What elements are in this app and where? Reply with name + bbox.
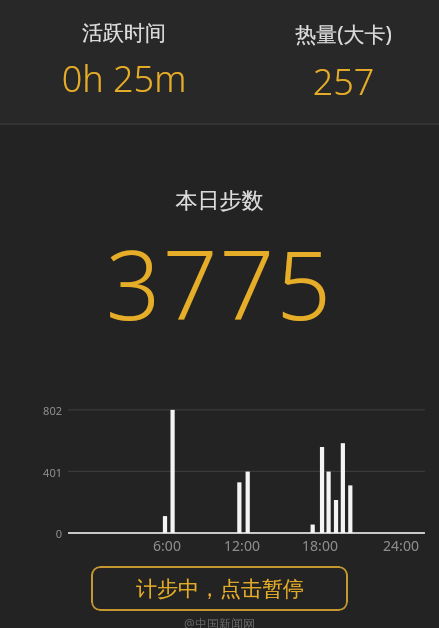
button[interactable]: 热量(大卡) xyxy=(248,0,439,123)
staticText: 18:00 xyxy=(290,536,350,555)
staticText: 24:00 xyxy=(371,536,431,555)
staticText: 本日步数 xyxy=(0,187,439,215)
staticText: 12:00 xyxy=(212,536,272,555)
staticText: 802 xyxy=(0,403,62,418)
staticText: 活跃时间 xyxy=(0,20,248,46)
button[interactable]: 活跃时间 xyxy=(0,0,248,123)
staticText: 3775 xyxy=(0,217,439,348)
staticText: 0 xyxy=(0,526,62,541)
staticText: 0h 25m xyxy=(0,54,248,103)
button[interactable]: 计步中，点击暂停 xyxy=(91,566,348,611)
staticText: 6:00 xyxy=(137,536,197,555)
staticText: 热量(大卡) xyxy=(248,20,439,49)
staticText: 257 xyxy=(248,57,439,106)
staticText: 401 xyxy=(0,465,62,480)
staticText: 计步中，点击暂停 xyxy=(136,576,304,602)
staticText: @中国新闻网 xyxy=(0,615,439,628)
